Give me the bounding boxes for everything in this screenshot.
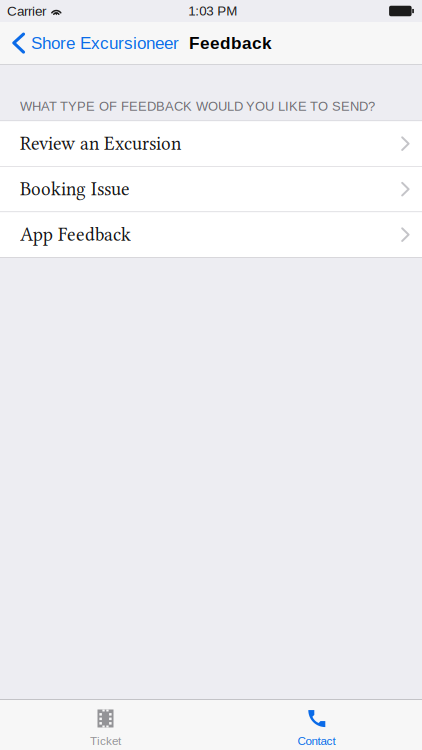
staticText: App Feedback [20, 224, 131, 245]
button[interactable]: Booking Issue [0, 167, 422, 212]
staticText: Feedback [189, 33, 272, 53]
button[interactable]: Shore Excursioneer [0, 22, 183, 64]
staticText: WHAT TYPE OF FEEDBACK WOULD YOU LIKE TO … [20, 99, 375, 114]
staticText: Ticket [90, 734, 121, 747]
staticText: Shore Excursioneer [31, 33, 179, 53]
staticText: Review an Excursion [20, 133, 181, 154]
button[interactable]: App Feedback [0, 212, 422, 257]
staticText: Carrier [7, 3, 46, 18]
staticText: Booking Issue [20, 178, 130, 200]
button[interactable]: Contact [211, 700, 422, 750]
staticText: Contact [297, 734, 335, 747]
staticText: 1:03 PM [188, 4, 237, 18]
button[interactable]: Ticket [0, 700, 211, 750]
button[interactable]: Review an Excursion [0, 121, 422, 166]
